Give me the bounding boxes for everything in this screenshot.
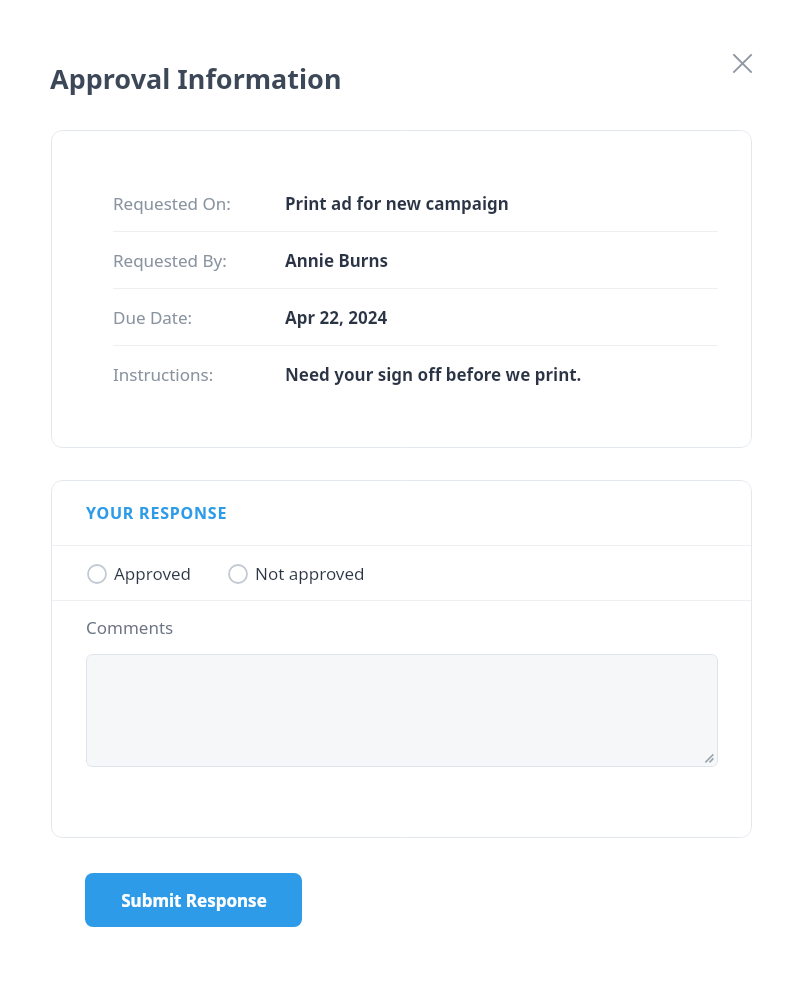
staticText: Apr 22, 2024	[285, 306, 388, 329]
staticText: YOUR RESPONSE	[86, 502, 228, 524]
button[interactable]: Submit Response	[85, 873, 302, 927]
staticText: Annie Burns	[285, 249, 389, 272]
staticText: Submit Response	[121, 889, 267, 912]
staticText: Requested On:	[113, 192, 285, 215]
staticText: Print ad for new campaign	[285, 192, 509, 215]
staticText: Approval Information	[50, 60, 342, 97]
staticText: Requested By:	[113, 249, 285, 272]
staticText: Instructions:	[113, 363, 285, 386]
staticText: Approved	[114, 562, 192, 585]
button[interactable]	[86, 654, 718, 767]
staticText: Due Date:	[113, 306, 285, 329]
staticText: Comments	[86, 616, 174, 639]
button[interactable]: Not approved	[226, 558, 367, 589]
staticText: Need your sign off before we print.	[285, 363, 582, 386]
button[interactable]: Approved	[85, 558, 194, 589]
button[interactable]: Close	[724, 45, 760, 81]
staticText: Not approved	[255, 562, 365, 585]
